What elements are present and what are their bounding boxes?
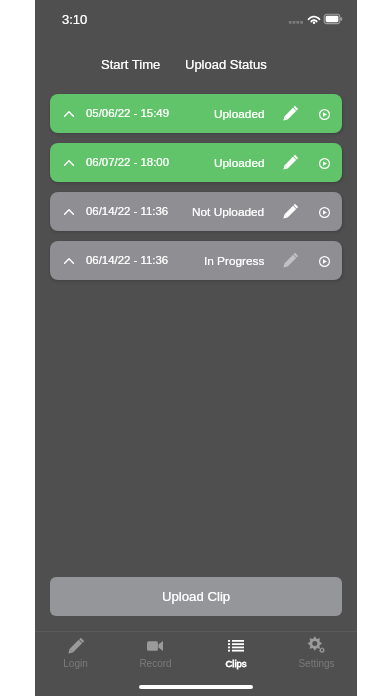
staticText: Upload Status <box>185 57 267 72</box>
button[interactable]: Edit <box>280 104 300 124</box>
button[interactable]: Play <box>314 202 334 222</box>
button[interactable]: Login <box>35 632 115 677</box>
button[interactable]: Edit <box>280 251 300 271</box>
button[interactable]: Clips <box>195 632 276 677</box>
staticText: Upload Clip <box>162 589 231 604</box>
button[interactable]: Settings <box>276 632 357 677</box>
staticText: In Progress <box>204 254 265 267</box>
button[interactable]: 05/06/22 - 15:49 <box>50 94 342 133</box>
staticText: 06/07/22 - 18:00 <box>86 156 169 169</box>
button[interactable]: Play <box>314 104 334 124</box>
staticText: 3:10 <box>62 12 88 27</box>
staticText: Record <box>139 658 172 669</box>
staticText: Settings <box>298 658 335 669</box>
staticText: Clips <box>225 658 247 669</box>
button[interactable]: 06/07/22 - 18:00 <box>50 143 342 182</box>
button[interactable]: 06/14/22 - 11:36 <box>50 192 342 231</box>
staticText: Login <box>63 658 88 669</box>
staticText: 05/06/22 - 15:49 <box>86 107 169 120</box>
button[interactable]: Edit <box>280 153 300 173</box>
staticText: 06/14/22 - 11:36 <box>86 254 169 267</box>
staticText: 06/14/22 - 11:36 <box>86 205 169 218</box>
staticText: Uploaded <box>214 156 265 169</box>
button[interactable]: Edit <box>280 202 300 222</box>
button[interactable]: Play <box>314 251 334 271</box>
staticText: Start Time <box>101 57 161 72</box>
staticText: Uploaded <box>214 107 265 120</box>
button[interactable]: 06/14/22 - 11:36 <box>50 241 342 280</box>
button[interactable]: Upload Clip <box>50 577 342 616</box>
button[interactable]: Play <box>314 153 334 173</box>
button[interactable]: Record <box>115 632 195 677</box>
staticText: Not Uploaded <box>192 205 265 218</box>
